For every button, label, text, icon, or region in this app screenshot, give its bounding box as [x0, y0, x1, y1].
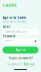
button[interactable]: Forgot password? — [0, 0, 41, 60]
staticText: Sign in to Cadre — [2, 16, 26, 19]
staticText: Sign in — [15, 48, 25, 52]
staticText: Password — [2, 34, 15, 38]
staticText: •••••••• — [4, 39, 12, 43]
staticText: Sign up — [23, 62, 34, 66]
staticText: Enter your details — [2, 20, 26, 23]
staticText: Email — [2, 25, 10, 28]
staticText: Forgot password? — [8, 56, 32, 60]
button[interactable]: Sign in — [0, 0, 41, 53]
staticText: CADRE — [2, 2, 16, 8]
staticText: No account? — [6, 62, 22, 66]
button[interactable]: Sign up — [23, 62, 34, 66]
staticText: name@email.com — [4, 30, 26, 33]
